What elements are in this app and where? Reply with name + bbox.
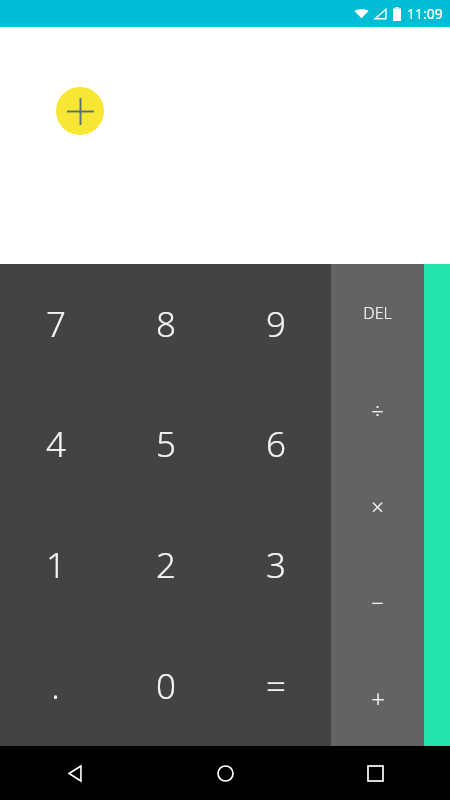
staticText: = — [266, 662, 286, 710]
button[interactable]: 6 — [221, 384, 331, 504]
button[interactable]: Add — [56, 87, 104, 135]
button[interactable]: 9 — [221, 264, 331, 384]
button[interactable]: Home — [150, 746, 300, 800]
button[interactable]: 1 — [0, 504, 111, 625]
staticText: 2 — [156, 541, 176, 589]
button[interactable]: 0 — [111, 625, 221, 746]
staticText: . — [51, 662, 60, 710]
button[interactable]: DEL — [331, 264, 424, 361]
staticText: × — [371, 491, 384, 521]
staticText: 3 — [266, 541, 286, 589]
staticText: 9 — [266, 300, 286, 348]
staticText: 4 — [46, 420, 66, 468]
staticText: 7 — [46, 300, 66, 348]
staticText: 1 — [46, 541, 66, 589]
staticText: 0 — [156, 662, 176, 710]
button[interactable]: 5 — [111, 384, 221, 504]
button[interactable]: × — [331, 458, 424, 554]
staticText: 5 — [156, 420, 176, 468]
button[interactable]: = — [221, 625, 331, 746]
staticText: DEL — [363, 302, 392, 324]
staticText: − — [371, 587, 384, 617]
button[interactable]: 2 — [111, 504, 221, 625]
button[interactable]: + — [331, 650, 424, 746]
staticText: 11:09 — [407, 4, 443, 23]
button[interactable]: 7 — [0, 264, 111, 384]
button[interactable]: 8 — [111, 264, 221, 384]
button[interactable]: . — [0, 625, 111, 746]
button[interactable]: 3 — [221, 504, 331, 625]
staticText: 6 — [266, 420, 286, 468]
staticText: ÷ — [371, 395, 384, 425]
button[interactable]: ÷ — [331, 361, 424, 458]
staticText: + — [371, 682, 385, 715]
button[interactable]: 4 — [0, 384, 111, 504]
button[interactable]: − — [331, 554, 424, 650]
button[interactable]: Recent apps — [300, 746, 450, 800]
button[interactable]: Back — [0, 746, 150, 800]
staticText: 8 — [156, 300, 176, 348]
